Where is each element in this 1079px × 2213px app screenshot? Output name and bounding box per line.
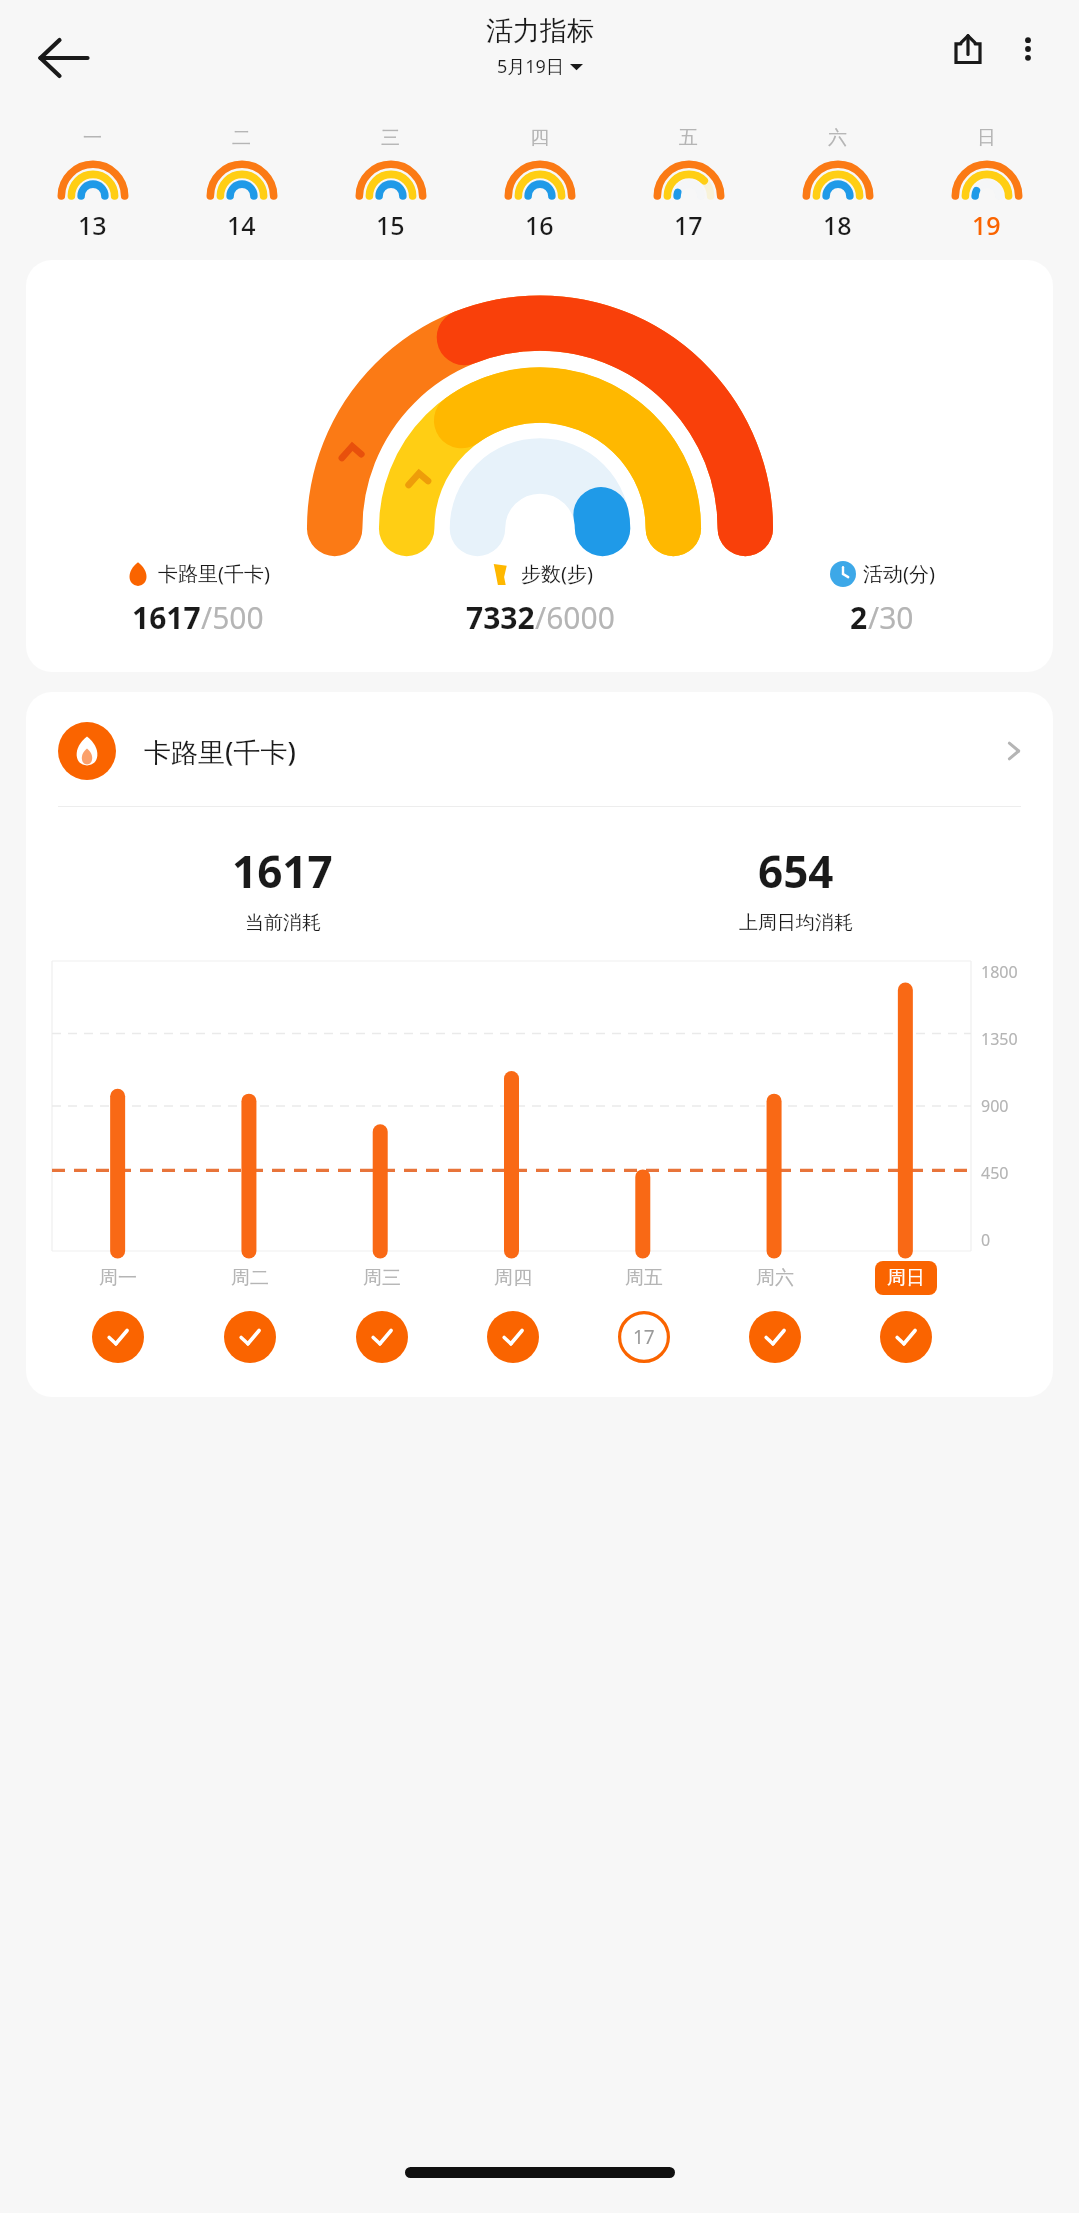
button[interactable]: 周二 [184,1261,316,1295]
staticText: 5月19日 [497,54,564,79]
button[interactable]: 周六 [709,1261,840,1295]
staticText: 当前消耗 [245,911,321,935]
button[interactable]: 活动(分) [711,560,1053,638]
staticText: 19 [972,208,1001,242]
staticText: 7332 [466,597,535,638]
staticText: 周五 [625,1266,663,1290]
button[interactable]: Day 14 goal [184,1311,316,1363]
staticText: 周四 [494,1266,532,1290]
staticText: 2 [850,597,868,638]
button[interactable]: 卡路里(千卡) [26,692,1053,806]
staticText: 15 [376,208,405,242]
staticText: 周六 [756,1266,794,1290]
staticText: 二 [232,126,251,150]
staticText: 活力指标 [486,14,594,48]
button[interactable]: 周三 [316,1261,447,1295]
staticText: 卡路里(千卡) [144,733,296,770]
staticText: 13 [78,208,107,242]
staticText: 四 [530,126,549,150]
button[interactable]: Day 16 goal [447,1311,578,1363]
staticText: 三 [381,126,400,150]
button[interactable]: 五 [614,126,763,242]
staticText: 1800 [981,961,1018,983]
staticText: 0 [981,1229,991,1251]
button[interactable]: 一 [18,126,167,242]
staticText: 17 [633,1324,655,1350]
button[interactable]: 日 [912,126,1061,242]
button[interactable]: Back [36,30,92,86]
staticText: 654 [758,841,834,901]
button[interactable]: 步数(步) [369,560,711,638]
button[interactable]: Day 18 goal [709,1311,840,1363]
staticText: 1617 [132,597,201,638]
staticText: 450 [981,1162,1009,1184]
button[interactable]: Day 13 goal [52,1311,184,1363]
button[interactable]: 周四 [447,1261,578,1295]
staticText: 周日 [887,1266,925,1290]
button[interactable]: 二 [167,126,316,242]
button[interactable]: 三 [316,126,465,242]
staticText: 上周日均消耗 [739,911,853,935]
staticText: 六 [828,126,847,150]
staticText: /30 [868,597,914,638]
staticText: /6000 [535,597,615,638]
staticText: 14 [227,208,256,242]
staticText: 活动(分) [863,560,935,587]
staticText: 1617 [232,841,333,901]
staticText: 周三 [363,1266,401,1290]
button[interactable]: Day 19 goal [840,1311,971,1363]
button[interactable]: 卡路里(千卡) [26,560,369,638]
button[interactable]: 周五 [578,1261,709,1295]
button[interactable]: 周日 [840,1261,971,1295]
staticText: 1350 [981,1028,1018,1050]
staticText: 周一 [99,1266,137,1290]
button[interactable]: Day 15 goal [316,1311,447,1363]
staticText: 18 [823,208,852,242]
staticText: 步数(步) [521,560,593,587]
staticText: 五 [679,126,698,150]
staticText: 一 [83,126,102,150]
staticText: 卡路里(千卡) [158,560,270,587]
staticText: 900 [981,1095,1009,1117]
staticText: 日 [977,126,996,150]
staticText: /500 [201,597,264,638]
staticText: 17 [674,208,703,242]
staticText: 周二 [231,1266,269,1290]
staticText: 16 [525,208,554,242]
button[interactable]: 四 [465,126,614,242]
button[interactable]: Day 17 goal [578,1311,709,1363]
button[interactable]: 六 [763,126,912,242]
button[interactable]: 5月19日 [497,54,583,79]
button[interactable]: 周一 [52,1261,184,1295]
button[interactable]: 卡路里(千卡) [26,260,1053,672]
button[interactable]: Share [941,22,995,76]
button[interactable]: More options [1001,22,1055,76]
